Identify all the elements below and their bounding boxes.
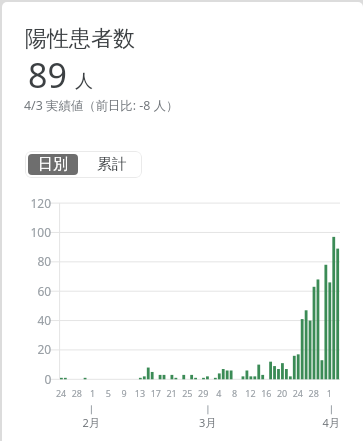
- staticText: 人: [75, 70, 93, 93]
- other: Daily positive cases bar chart: [2, 2, 363, 441]
- staticText: 陽性患者数: [25, 25, 135, 53]
- staticText: 4/3 実績値（前日比: -8 人）: [24, 97, 179, 114]
- staticText: 累計: [97, 155, 127, 174]
- button[interactable]: 日別: [28, 154, 78, 175]
- staticText: 日別: [38, 155, 68, 174]
- button[interactable]: 累計: [84, 154, 139, 175]
- staticText: 89: [28, 52, 67, 98]
